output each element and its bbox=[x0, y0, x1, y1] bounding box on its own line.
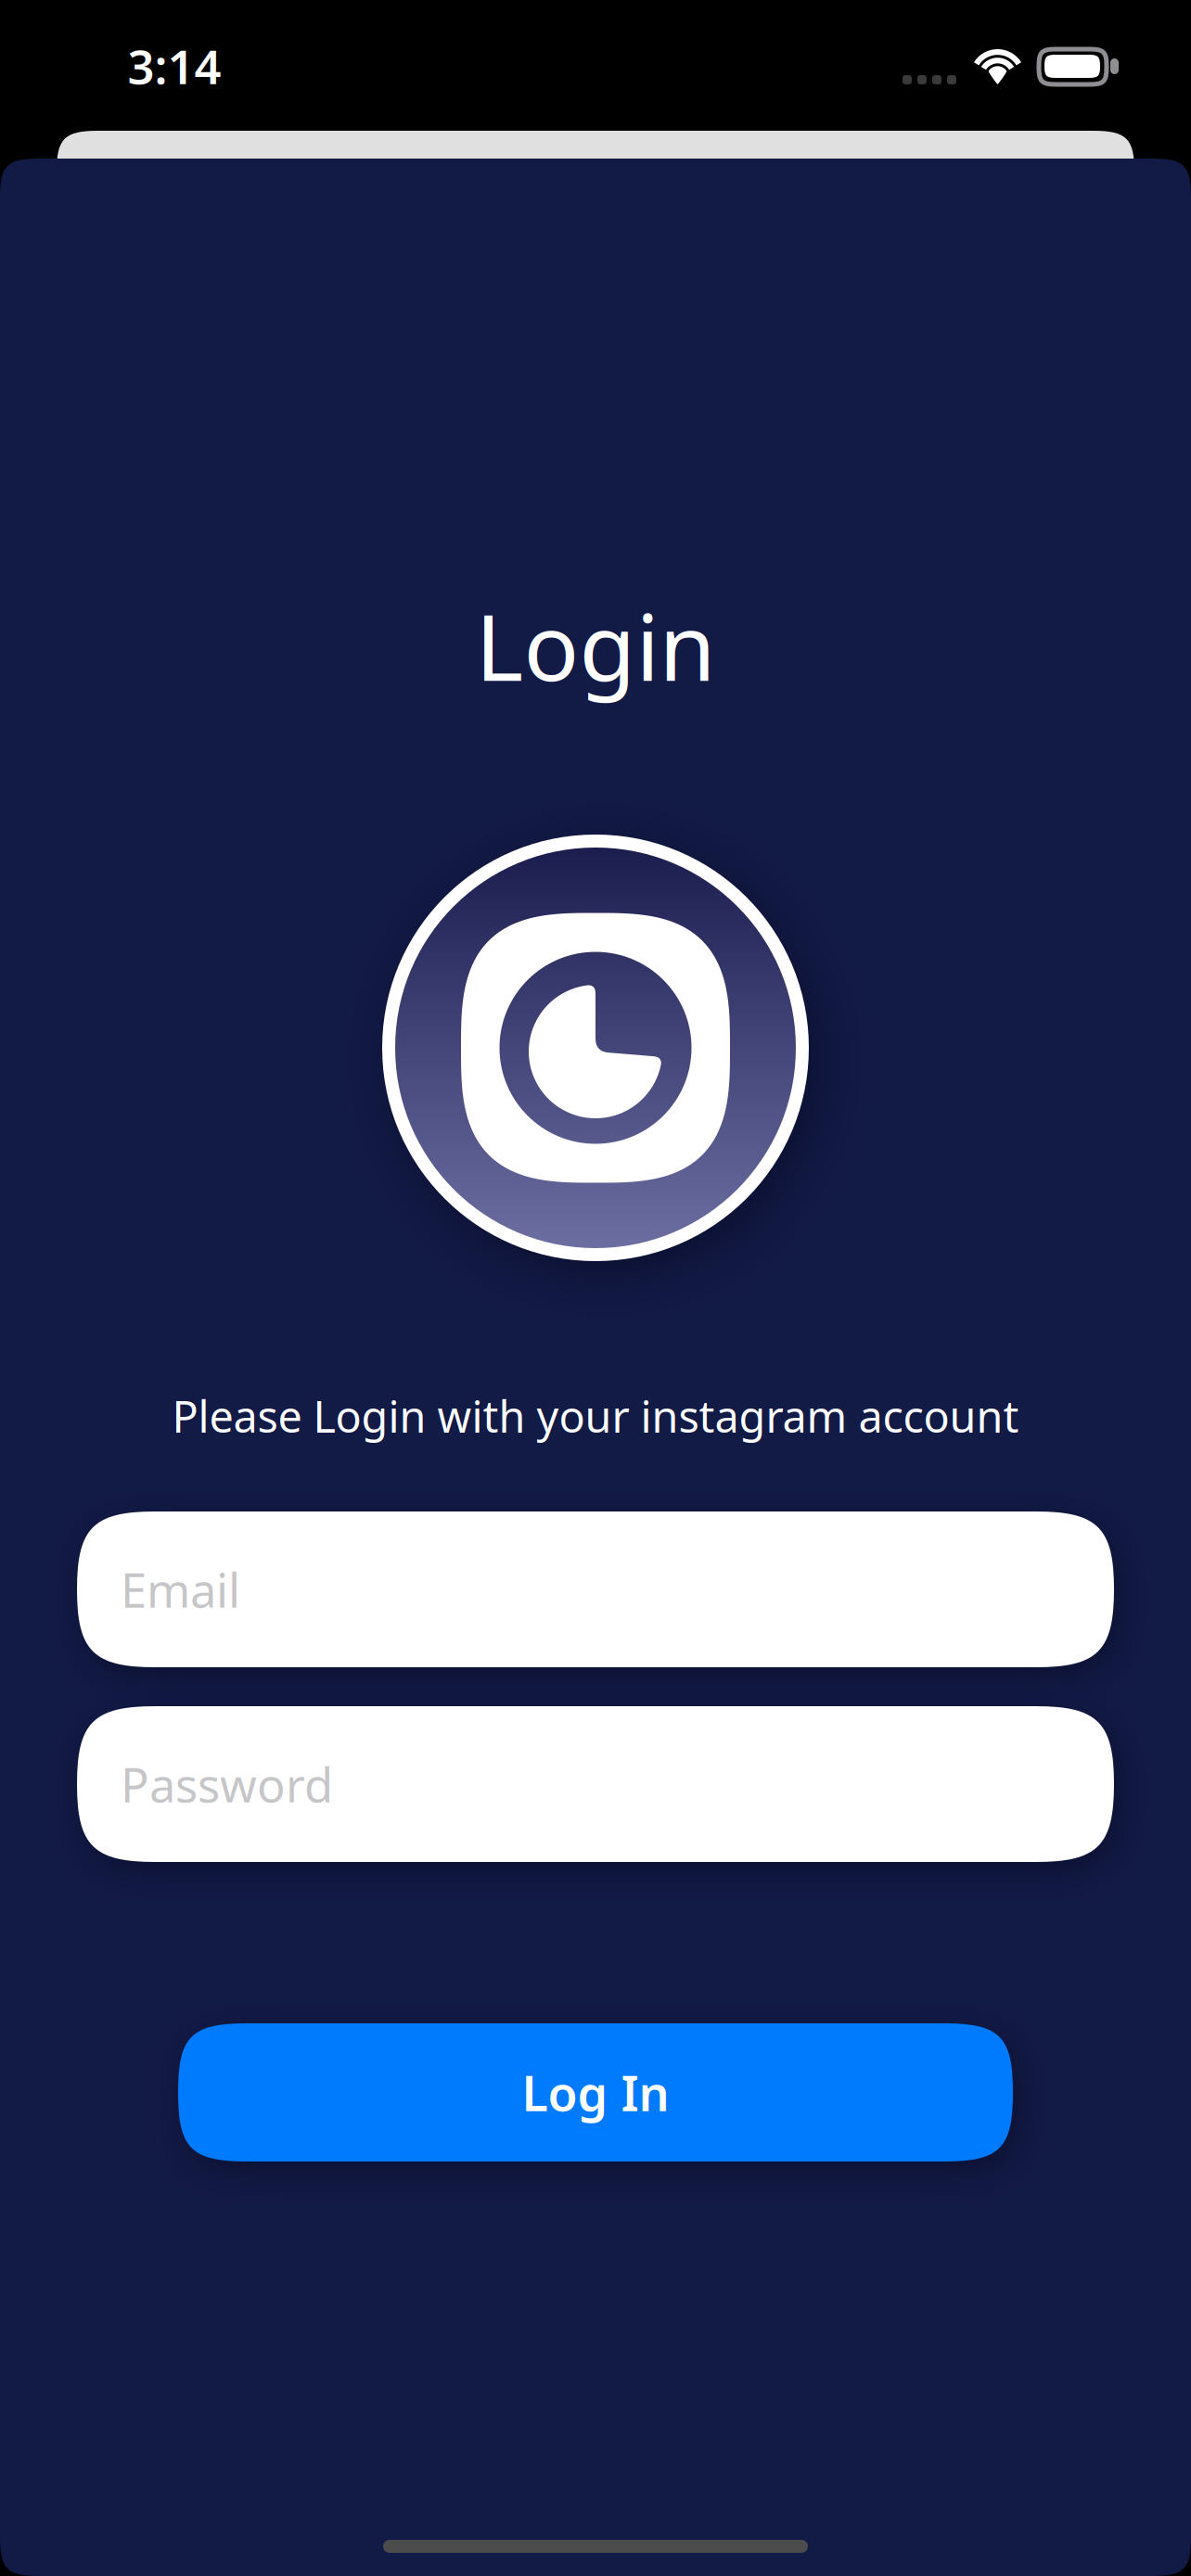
staticText: Email bbox=[121, 1558, 240, 1621]
button[interactable]: Log In bbox=[178, 2023, 1013, 2162]
staticText: Login bbox=[475, 585, 716, 706]
button[interactable]: Email bbox=[77, 1511, 1114, 1667]
staticText: 3:14 bbox=[128, 35, 221, 97]
staticText: Log In bbox=[522, 2060, 669, 2125]
staticText: Password bbox=[121, 1753, 333, 1815]
button[interactable]: Password bbox=[77, 1706, 1114, 1862]
staticText: Please Login with your instagram account bbox=[172, 1387, 1019, 1445]
